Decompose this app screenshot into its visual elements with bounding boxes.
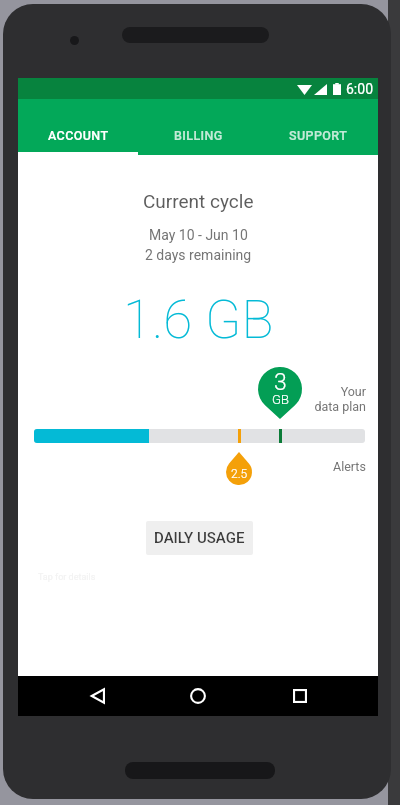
button[interactable]: Recents bbox=[276, 676, 324, 716]
staticText: data plan bbox=[314, 399, 366, 414]
button[interactable]: DAILY USAGE bbox=[146, 521, 253, 555]
staticText: BILLING bbox=[174, 128, 223, 143]
staticText: Alerts bbox=[333, 459, 366, 474]
staticText: Your bbox=[340, 384, 366, 399]
staticText: SUPPORT bbox=[289, 128, 348, 143]
button[interactable]: Home bbox=[174, 676, 222, 716]
staticText: 3 bbox=[274, 369, 287, 396]
button[interactable]: ACCOUNT bbox=[18, 99, 138, 155]
button[interactable]: Back bbox=[73, 676, 121, 716]
staticText: DAILY USAGE bbox=[154, 529, 245, 547]
staticText: 2 days remaining bbox=[145, 247, 252, 263]
staticText: 6:00 bbox=[346, 81, 373, 97]
staticText: 1.6 GB bbox=[123, 289, 274, 351]
staticText: ACCOUNT bbox=[48, 128, 109, 143]
button[interactable]: BILLING bbox=[138, 99, 258, 155]
staticText: GB bbox=[272, 392, 289, 407]
staticText: Current cycle bbox=[143, 190, 254, 212]
staticText: Tap for details bbox=[38, 572, 96, 583]
button[interactable]: SUPPORT bbox=[258, 99, 378, 155]
staticText: 2.5 bbox=[231, 467, 248, 481]
staticText: May 10 - Jun 10 bbox=[149, 227, 248, 243]
